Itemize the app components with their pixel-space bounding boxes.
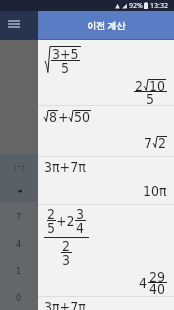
button[interactable]: Menu <box>8 20 20 28</box>
staticText: 3 <box>62 252 71 268</box>
staticText: 10π <box>143 183 167 199</box>
staticText: 3 <box>76 206 85 222</box>
staticText: 2 <box>47 206 56 222</box>
button[interactable]: 7 <box>0 203 38 230</box>
staticText: 2 <box>135 78 144 94</box>
staticText: 92% <box>129 1 143 11</box>
button[interactable] <box>38 204 174 296</box>
staticText: 4 <box>16 239 22 249</box>
staticText: 3π+7π <box>44 159 86 175</box>
staticText: 0 <box>16 293 22 303</box>
staticText: 29 <box>149 269 166 285</box>
button[interactable]: (−) <box>0 155 38 179</box>
staticText: 4 <box>76 220 85 236</box>
staticText: 5 <box>146 91 155 107</box>
staticText: 1 <box>16 266 22 276</box>
staticText: ◄ <box>17 187 22 195</box>
staticText: 7 <box>144 135 153 151</box>
staticText: 5 <box>47 220 56 236</box>
button[interactable]: ◄ <box>0 179 38 203</box>
staticText: 2 <box>158 135 167 151</box>
staticText: 3+5 <box>52 46 79 62</box>
staticText: 8 <box>49 109 58 125</box>
button[interactable] <box>38 156 174 204</box>
button[interactable]: 1 <box>0 257 38 284</box>
staticText: +2 <box>56 213 75 229</box>
button[interactable] <box>38 105 174 156</box>
staticText: 3π+7π <box>44 299 86 310</box>
staticText: 13:32 <box>150 1 168 11</box>
staticText: (−) <box>14 163 25 171</box>
staticText: 2 <box>62 238 71 254</box>
staticText: 50 <box>74 109 91 125</box>
staticText: 4 <box>139 275 148 291</box>
staticText: + <box>58 109 69 125</box>
staticText: 40 <box>149 281 166 297</box>
staticText: 5 <box>61 60 70 76</box>
button[interactable]: 0 <box>0 284 38 310</box>
button[interactable] <box>38 40 174 105</box>
staticText: 10 <box>149 78 166 94</box>
staticText: 이전 계산 <box>87 19 126 31</box>
staticText: 7 <box>16 212 22 222</box>
button[interactable]: 이전 계산 <box>38 11 174 39</box>
button[interactable]: 4 <box>0 230 38 257</box>
